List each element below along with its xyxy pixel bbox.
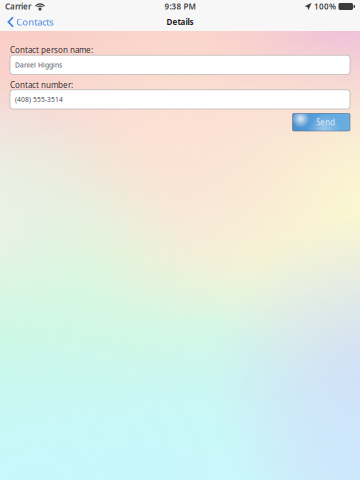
- staticText: Contact person name:: [10, 45, 93, 55]
- button[interactable]: Send: [292, 113, 350, 131]
- staticText: Send: [316, 117, 335, 127]
- staticText: Daniel Higgins: [15, 60, 62, 69]
- button[interactable]: Contacts: [0, 13, 60, 31]
- staticText: (408) 555-3514: [15, 95, 63, 104]
- staticText: Contacts: [16, 16, 53, 28]
- staticText: Details: [166, 17, 193, 27]
- staticText: 100%: [314, 1, 336, 12]
- staticText: 9:38 PM: [164, 1, 195, 12]
- staticText: Carrier: [5, 1, 31, 12]
- staticText: Contact number:: [10, 79, 73, 90]
